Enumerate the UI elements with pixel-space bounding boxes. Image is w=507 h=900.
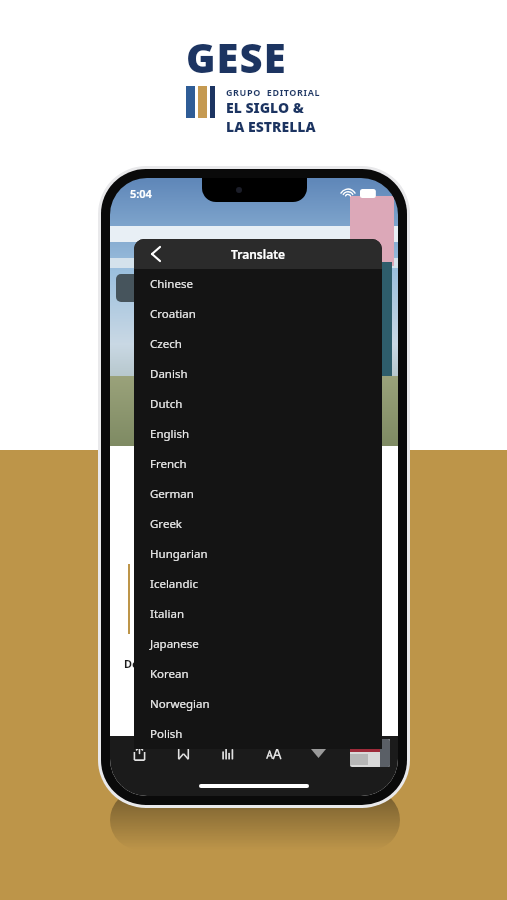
staticText: Croatian — [150, 306, 196, 322]
staticText: French — [150, 456, 187, 472]
button[interactable]: Hungarian — [134, 539, 382, 569]
staticText: Icelandic — [150, 576, 198, 592]
staticText: Polish — [150, 726, 183, 742]
staticText: Japanese — [150, 636, 199, 652]
staticText: Translate — [231, 246, 286, 262]
button[interactable]: Danish — [134, 359, 382, 389]
button[interactable]: German — [134, 479, 382, 509]
staticText: Chinese — [150, 276, 193, 292]
staticText: Korean — [150, 666, 189, 682]
button[interactable]: Korean — [134, 659, 382, 689]
staticText: Danish — [150, 366, 188, 382]
staticText: LA ESTRELLA — [226, 117, 316, 136]
button[interactable]: Listen — [215, 740, 241, 766]
button[interactable]: Back — [144, 242, 168, 266]
button[interactable]: Norwegian — [134, 689, 382, 719]
button[interactable]: Icelandic — [134, 569, 382, 599]
button[interactable]: Dutch — [134, 389, 382, 419]
staticText: GESE — [186, 30, 287, 84]
button[interactable]: Collapse — [305, 740, 331, 766]
button[interactable]: Translate — [134, 239, 382, 269]
staticText: De — [124, 656, 139, 671]
staticText: English — [150, 426, 190, 442]
button[interactable]: Chinese — [134, 269, 382, 299]
staticText: Italian — [150, 606, 184, 622]
button[interactable]: Bookmark — [170, 740, 196, 766]
button[interactable]: Croatian — [134, 299, 382, 329]
staticText: Dutch — [150, 396, 183, 412]
button[interactable]: Share — [126, 740, 152, 766]
staticText: Norwegian — [150, 696, 210, 712]
staticText: Greek — [150, 516, 183, 532]
staticText: Czech — [150, 336, 182, 352]
button[interactable]: Czech — [134, 329, 382, 359]
button[interactable]: Polish — [134, 719, 382, 749]
button[interactable]: Greek — [134, 509, 382, 539]
staticText: GRUPO EDITORIAL — [226, 86, 321, 98]
button[interactable]: Japanese — [134, 629, 382, 659]
button[interactable]: Newspaper page — [350, 739, 390, 767]
staticText: EL SIGLO & — [226, 98, 304, 117]
button[interactable]: Italian — [134, 599, 382, 629]
staticText: 5:04 — [130, 186, 152, 201]
button[interactable]: Text size — [260, 740, 286, 766]
button[interactable]: French — [134, 449, 382, 479]
button[interactable]: English — [134, 419, 382, 449]
staticText: Hungarian — [150, 546, 208, 562]
staticText: German — [150, 486, 194, 502]
